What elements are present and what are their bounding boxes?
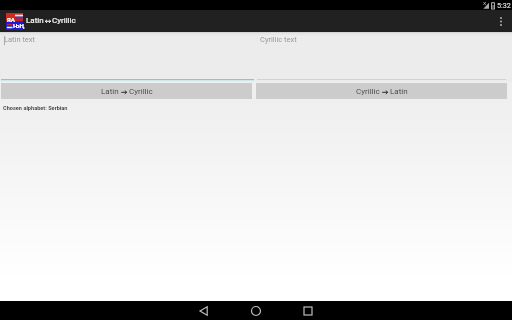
staticText: Cyrillic bbox=[129, 87, 153, 96]
staticText: Latin bbox=[101, 87, 119, 96]
button[interactable]: Recents bbox=[282, 301, 334, 320]
staticText: Cyrillic bbox=[356, 87, 380, 96]
staticText: Cyrillic bbox=[52, 16, 76, 25]
button[interactable]: Latin bbox=[1, 83, 252, 99]
staticText: Latin bbox=[390, 87, 408, 96]
button[interactable]: Cyrillic bbox=[256, 83, 507, 99]
button[interactable] bbox=[256, 32, 512, 82]
staticText: Cyrillic text bbox=[260, 35, 297, 44]
button[interactable]: More options bbox=[490, 10, 512, 32]
staticText: Latin bbox=[26, 16, 44, 25]
staticText: ЊҢ bbox=[13, 22, 25, 29]
staticText: Latin text bbox=[4, 35, 36, 44]
button[interactable]: Back bbox=[178, 301, 230, 320]
button[interactable]: Home bbox=[230, 301, 282, 320]
button[interactable] bbox=[0, 32, 256, 82]
staticText: Chosen alphabet: Serbian bbox=[3, 105, 68, 112]
staticText: ЯA bbox=[7, 16, 15, 23]
staticText: 5:32 bbox=[497, 1, 511, 9]
